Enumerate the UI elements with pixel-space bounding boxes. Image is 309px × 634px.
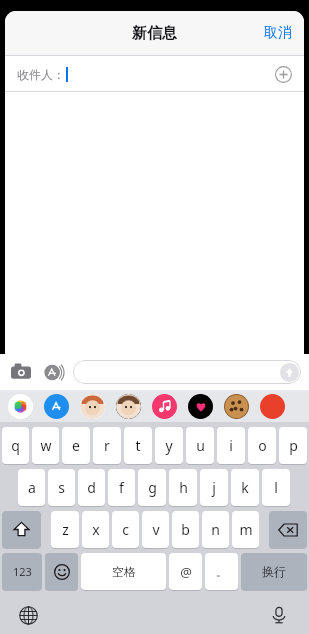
button[interactable]: y xyxy=(155,427,183,464)
button[interactable]: i xyxy=(217,427,245,464)
button[interactable]: 换行 xyxy=(241,553,307,590)
button[interactable]: Add contact xyxy=(270,61,296,87)
staticText: 123 xyxy=(13,564,32,579)
staticText: 取消 xyxy=(264,24,292,42)
staticText: h xyxy=(179,478,188,497)
staticText: w xyxy=(40,436,52,455)
button[interactable]: App 1 xyxy=(44,394,69,419)
button[interactable]: q xyxy=(2,427,29,464)
button[interactable]: o xyxy=(248,427,276,464)
button[interactable]: 收件人： xyxy=(5,56,304,92)
button[interactable]: m xyxy=(232,511,259,548)
button[interactable]: 。 xyxy=(205,553,238,590)
button[interactable]: l xyxy=(262,469,290,506)
button[interactable]: @ xyxy=(169,553,202,590)
staticText: x xyxy=(92,520,100,539)
staticText: b xyxy=(181,520,190,539)
staticText: d xyxy=(87,478,96,497)
staticText: 空格 xyxy=(112,564,136,579)
staticText: a xyxy=(28,478,36,497)
button[interactable]: Camera xyxy=(8,359,34,385)
button[interactable]: r xyxy=(93,427,121,464)
staticText: u xyxy=(196,436,205,455)
button[interactable]: g xyxy=(138,469,166,506)
button[interactable]: App 7 xyxy=(260,394,285,419)
button[interactable]: App 4 xyxy=(152,394,177,419)
staticText: j xyxy=(212,478,216,497)
staticText: c xyxy=(122,520,129,539)
button[interactable]: Send xyxy=(280,363,299,382)
button[interactable]: k xyxy=(231,469,259,506)
button[interactable]: x xyxy=(82,511,109,548)
button[interactable]: n xyxy=(202,511,229,548)
staticText: r xyxy=(104,436,110,455)
staticText: l xyxy=(274,478,278,497)
button[interactable]: App 6 xyxy=(224,394,249,419)
staticText: k xyxy=(241,478,249,497)
button[interactable]: d xyxy=(78,469,105,506)
button[interactable]: 空格 xyxy=(81,553,166,590)
button[interactable]: Dictation xyxy=(266,602,292,628)
staticText: g xyxy=(148,478,157,497)
staticText: 新信息 xyxy=(132,24,177,43)
staticText: 。 xyxy=(216,565,227,579)
staticText: e xyxy=(72,436,80,455)
button[interactable]: e xyxy=(62,427,90,464)
button[interactable]: 123 xyxy=(2,553,42,590)
button[interactable]: u xyxy=(186,427,214,464)
button[interactable]: j xyxy=(200,469,228,506)
staticText: q xyxy=(11,436,20,455)
staticText: i xyxy=(229,436,233,455)
staticText: @ xyxy=(180,563,192,581)
button[interactable]: t xyxy=(124,427,152,464)
button[interactable]: Delete xyxy=(269,511,307,548)
button[interactable]: h xyxy=(169,469,197,506)
button[interactable]: Send xyxy=(73,360,301,384)
button[interactable]: p xyxy=(279,427,307,464)
button[interactable]: Emoji xyxy=(45,553,78,590)
button[interactable]: Shift xyxy=(2,511,41,548)
button[interactable]: App 0 xyxy=(8,394,33,419)
button[interactable]: b xyxy=(172,511,199,548)
staticText: f xyxy=(119,478,124,497)
staticText: v xyxy=(152,520,160,539)
staticText: n xyxy=(211,520,220,539)
button[interactable]: 取消 xyxy=(252,14,304,52)
button[interactable]: App 3 xyxy=(116,394,141,419)
staticText: 收件人： xyxy=(17,67,65,82)
button[interactable]: f xyxy=(108,469,135,506)
button[interactable]: z xyxy=(51,511,79,548)
staticText: y xyxy=(165,436,173,455)
staticText: o xyxy=(258,436,267,455)
staticText: p xyxy=(289,436,298,455)
button[interactable]: Switch keyboard xyxy=(15,602,41,628)
staticText: s xyxy=(58,478,65,497)
button[interactable]: s xyxy=(48,469,75,506)
button[interactable]: App 2 xyxy=(80,394,105,419)
staticText: 换行 xyxy=(262,564,286,579)
button[interactable]: App 5 xyxy=(188,394,213,419)
staticText: t xyxy=(135,436,141,455)
button[interactable]: a xyxy=(18,469,45,506)
button[interactable]: c xyxy=(112,511,139,548)
staticText: z xyxy=(62,520,69,539)
button[interactable]: Apps xyxy=(40,359,66,385)
button[interactable]: v xyxy=(142,511,169,548)
button[interactable]: w xyxy=(32,427,59,464)
staticText: m xyxy=(239,520,253,539)
